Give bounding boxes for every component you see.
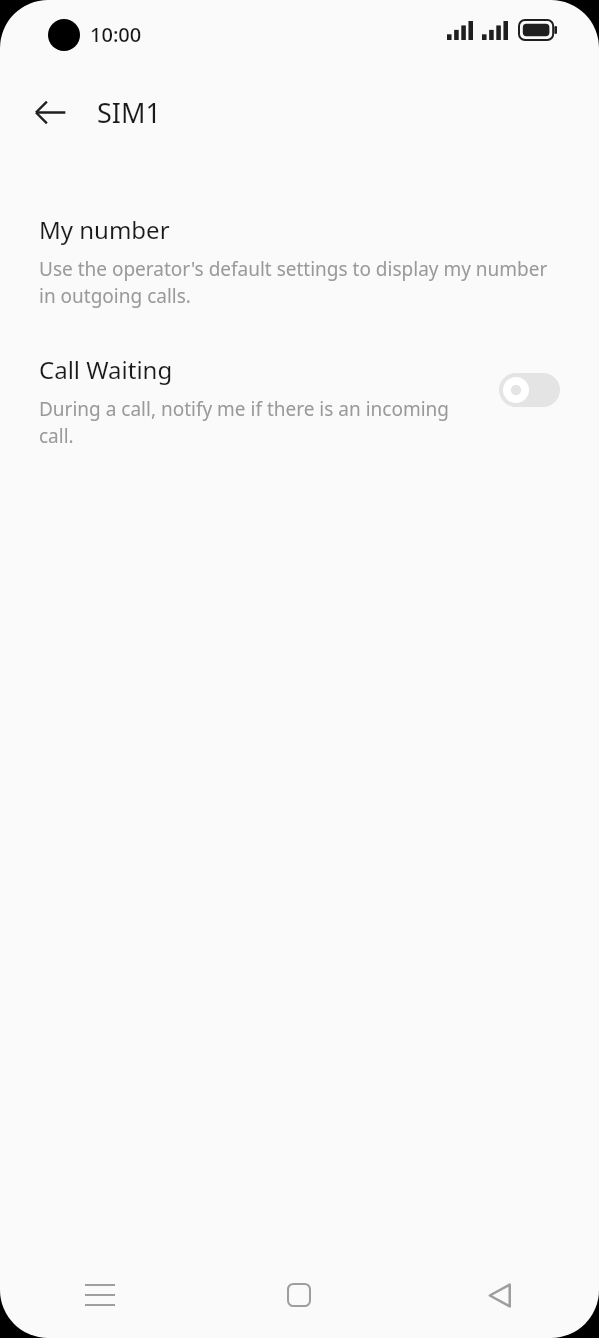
- staticText: Call Waiting: [39, 353, 173, 386]
- staticText: During a call, notify me if there is an …: [39, 396, 485, 449]
- staticText: SIM1: [97, 94, 161, 131]
- button[interactable]: Back: [22, 84, 78, 140]
- staticText: My number: [39, 213, 170, 246]
- button[interactable]: Recents: [0, 1252, 199, 1338]
- staticText: Use the operator's default settings to d…: [39, 256, 560, 309]
- button[interactable]: Call Waiting toggle: [499, 373, 560, 407]
- button[interactable]: Back: [399, 1252, 599, 1338]
- staticText: 10:00: [90, 21, 142, 48]
- button[interactable]: My number: [0, 213, 599, 309]
- button[interactable]: Home: [199, 1252, 399, 1338]
- button[interactable]: Call Waiting: [0, 353, 599, 449]
